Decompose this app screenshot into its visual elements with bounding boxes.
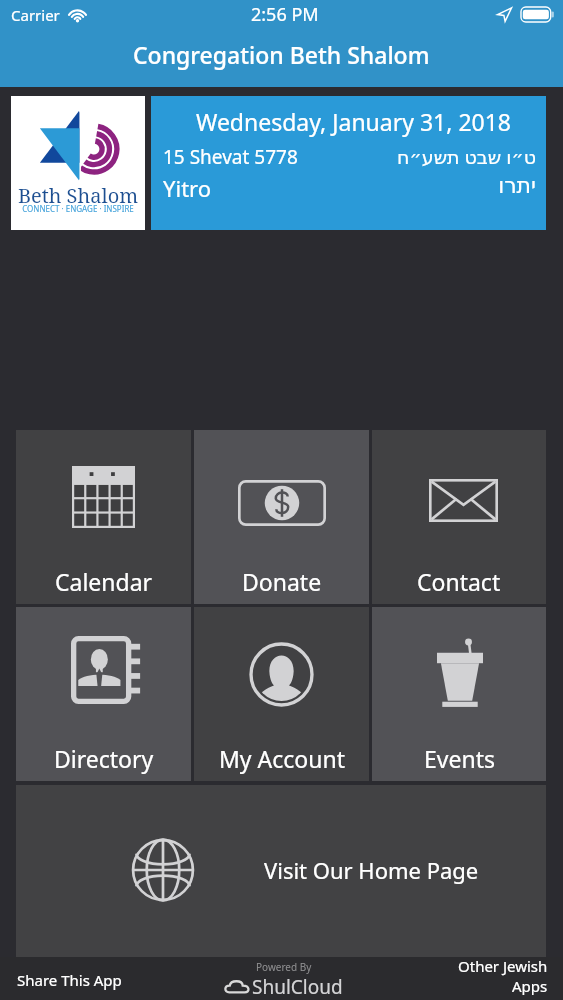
button[interactable]: Beth Shalom logo: [11, 96, 145, 230]
staticText: CONNECT · ENGAGE · INSPIRE: [11, 203, 145, 214]
staticText: Share This App: [17, 970, 122, 990]
staticText: My Account: [219, 743, 345, 774]
staticText: Wednesday, January 31, 2018: [156, 106, 551, 137]
staticText: Powered By: [256, 960, 312, 974]
staticText: Donate: [242, 566, 322, 597]
staticText: יתרו: [151, 173, 536, 199]
other: Battery: [521, 7, 554, 22]
other: Wi-Fi: [67, 7, 88, 22]
staticText: Beth Shalom: [11, 182, 145, 209]
staticText: Congregation Beth Shalom: [133, 39, 430, 70]
staticText: Visit Our Home Page: [264, 855, 479, 885]
button[interactable]: Donate: [194, 430, 369, 604]
staticText: 15 Shevat 5778: [163, 144, 298, 170]
staticText: ט״ו שבט תשע״ח: [151, 144, 536, 170]
button[interactable]: Other Jewish: [448, 954, 563, 997]
button[interactable]: Calendar: [16, 430, 191, 604]
staticText: ShulCloud: [252, 974, 343, 1000]
button[interactable]: Contact: [372, 430, 546, 604]
staticText: Yitro: [163, 173, 212, 203]
staticText: Contact: [417, 566, 501, 597]
button[interactable]: Directory: [16, 607, 191, 781]
button[interactable]: Visit Our Home Page: [16, 785, 546, 957]
staticText: Other Jewish: [458, 956, 548, 976]
button[interactable]: My Account: [194, 607, 369, 781]
staticText: Apps: [512, 976, 548, 995]
staticText: Calendar: [55, 566, 153, 597]
staticText: 2:56 PM: [251, 2, 319, 27]
staticText: Carrier: [11, 5, 60, 25]
button[interactable]: Share This App: [0, 962, 134, 998]
staticText: Directory: [54, 743, 154, 774]
button[interactable]: Events: [372, 607, 546, 781]
other: Location: [497, 7, 512, 22]
button[interactable]: Wednesday, January 31, 2018: [151, 96, 546, 230]
staticText: Events: [424, 743, 495, 774]
